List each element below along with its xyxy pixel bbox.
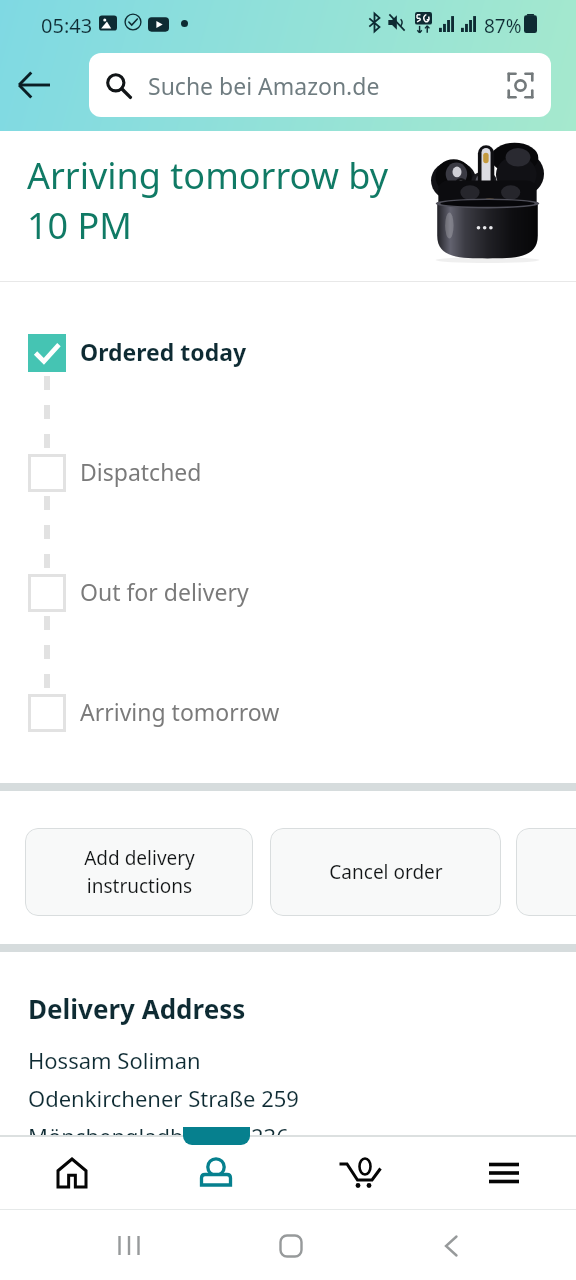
- staticText: Ordered today: [80, 336, 247, 367]
- button[interactable]: Cart, 0 items: [288, 1137, 432, 1209]
- staticText: Cancel order: [329, 859, 443, 885]
- button[interactable]: Back: [429, 1224, 473, 1268]
- staticText: 87%: [484, 13, 522, 39]
- staticText: Suche bei Amazon.de: [148, 70, 380, 101]
- staticText: Add delivery instructions: [84, 845, 195, 899]
- button[interactable]: Recent apps: [107, 1224, 151, 1268]
- button[interactable]: Suche bei Amazon.de: [89, 53, 551, 117]
- button[interactable]: Your Account: [144, 1137, 288, 1209]
- button[interactable]: Home: [269, 1224, 313, 1268]
- staticText: Hossam Soliman: [28, 1045, 201, 1075]
- staticText: 05:43: [41, 12, 93, 39]
- staticText: Dispatched: [80, 456, 202, 487]
- button[interactable]: Out for delivery: [0, 573, 576, 613]
- staticText: Arriving tomorrow by 10 PM: [27, 151, 389, 250]
- button[interactable]: Dispatched: [0, 453, 576, 493]
- staticText: Arriving tomorrow: [80, 696, 280, 727]
- button[interactable]: Home: [0, 1137, 144, 1209]
- staticText: Out for delivery: [80, 576, 249, 607]
- staticText: Mönchengladbach 41236: [28, 1121, 289, 1151]
- staticText: Odenkirchener Straße 259: [28, 1083, 299, 1113]
- button[interactable]: Back: [8, 59, 60, 111]
- button[interactable]: Cancel order: [270, 828, 501, 916]
- button[interactable]: Ordered today: [0, 333, 576, 373]
- button[interactable]: Menu: [432, 1137, 576, 1209]
- staticText: Delivery Address: [28, 991, 246, 1026]
- button[interactable]: Arriving tomorrow: [0, 693, 576, 733]
- button[interactable]: [516, 828, 576, 916]
- button[interactable]: Add delivery instructions: [25, 828, 253, 916]
